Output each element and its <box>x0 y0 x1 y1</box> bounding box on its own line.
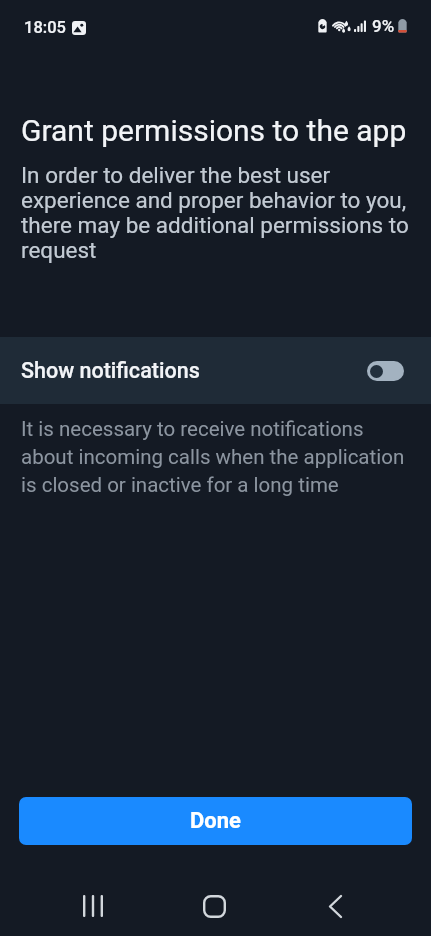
button[interactable]: Back <box>305 876 365 936</box>
staticText: 18:05 <box>24 18 66 37</box>
button[interactable]: Recent apps <box>63 876 123 936</box>
button[interactable]: Home <box>184 876 244 936</box>
button[interactable]: Show notifications <box>0 337 431 404</box>
button[interactable]: Done <box>19 797 412 845</box>
staticText: In order to deliver the best user experi… <box>21 162 411 264</box>
staticText: 9% <box>372 16 395 36</box>
staticText: Grant permissions to the app <box>21 113 421 148</box>
staticText: Done <box>190 808 241 834</box>
staticText: Show notifications <box>21 358 200 383</box>
staticText: It is necessary to receive notifications… <box>21 417 406 497</box>
button[interactable]: Show notifications toggle <box>367 361 404 381</box>
